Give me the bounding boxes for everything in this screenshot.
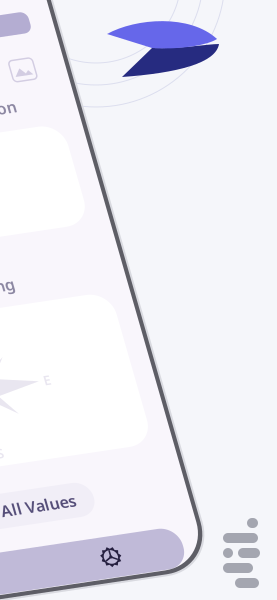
staticText: Show All Values [65, 543, 187, 565]
staticText: Heading [122, 318, 187, 340]
button[interactable]: Show All Values [47, 536, 205, 572]
